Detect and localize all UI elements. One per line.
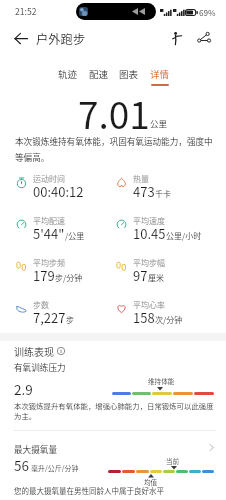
staticText: 公里	[150, 117, 168, 129]
staticText: 您的最大摄氧量在男性同龄人中属于良好水平	[14, 485, 164, 496]
staticText: 平均步频	[33, 257, 65, 269]
staticText: 最大摄氧量	[14, 443, 57, 455]
staticText: 本次锻炼维持有氧体能，巩固有氧运动能力，强度中等偏高。	[15, 135, 215, 163]
staticText: 10.45	[133, 224, 166, 243]
button[interactable]: 详情	[150, 67, 170, 86]
staticText: 5'44"	[33, 224, 65, 243]
button[interactable]: Share	[193, 27, 215, 49]
button[interactable]: 图表	[119, 67, 139, 84]
staticText: 次/分钟	[155, 314, 183, 326]
staticText: 公里/小时	[166, 230, 202, 242]
staticText: 步数	[33, 299, 49, 311]
staticText: 均值	[144, 477, 158, 487]
staticText: 179	[33, 266, 55, 285]
staticText: 平均配速	[33, 215, 65, 227]
staticText: 图表	[119, 67, 139, 81]
staticText: 轨迹	[58, 67, 78, 81]
staticText: 步	[66, 314, 74, 326]
staticText: 69%	[199, 6, 216, 18]
staticText: 21:52	[15, 5, 37, 17]
staticText: 热量	[133, 173, 149, 185]
staticText: 2.9	[14, 379, 33, 399]
staticText: 7,227	[33, 308, 66, 327]
staticText: 配速	[89, 67, 109, 81]
staticText: 详情	[150, 67, 170, 81]
staticText: 平均步幅	[133, 257, 165, 269]
button[interactable]: Back	[7, 28, 35, 48]
staticText: 有氧训练压力	[14, 361, 66, 373]
staticText: 97	[133, 266, 148, 285]
button[interactable]: 训练表现	[14, 344, 65, 358]
staticText: 维持体能	[148, 376, 175, 386]
staticText: 运动时间	[33, 173, 65, 185]
button[interactable]: 配速	[89, 67, 109, 84]
staticText: 训练表现	[14, 344, 54, 358]
staticText: 平均速度	[133, 215, 165, 227]
staticText: 当前	[166, 456, 180, 466]
staticText: 7.01	[78, 86, 150, 140]
staticText: 56	[14, 455, 29, 475]
staticText: 厘米	[148, 272, 164, 284]
staticText: 毫升/公斤/分钟	[31, 463, 79, 473]
staticText: 步/分钟	[55, 272, 83, 284]
staticText: 00:40:12	[33, 182, 84, 201]
button[interactable]: 最大摄氧量	[0, 436, 226, 486]
staticText: 平均心率	[133, 299, 165, 311]
staticText: 158	[133, 308, 155, 327]
button[interactable]: 轨迹	[58, 67, 78, 84]
staticText: /公里	[65, 230, 85, 242]
staticText: 户外跑步	[36, 30, 86, 48]
staticText: 千卡	[155, 188, 171, 200]
button[interactable]: Activity type	[165, 27, 187, 49]
staticText: 473	[133, 182, 155, 201]
staticText: 本次锻炼提升有氧体能，增强心肺能力，日常锻炼可以此强度为主。	[14, 400, 218, 422]
